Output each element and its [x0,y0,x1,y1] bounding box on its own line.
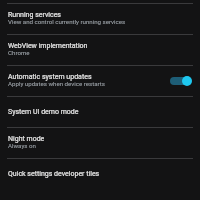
staticText: Apply updates when device restarts [8,80,105,87]
button[interactable]: Running services [0,4,200,34]
staticText: WebView implementation [8,42,88,50]
button[interactable]: Automatic system updates toggle, on [170,75,192,87]
staticText: System UI demo mode [8,108,79,116]
button[interactable]: Quick settings developer tiles [0,159,200,189]
button[interactable]: Night mode [0,128,200,158]
staticText: Chrome [8,49,30,56]
staticText: Night mode [8,135,45,143]
button[interactable]: WebView implementation [0,35,200,65]
staticText: Running services [8,11,61,19]
button[interactable]: System UI demo mode [0,97,200,127]
staticText: View and control currently running servi… [8,18,126,25]
staticText: Automatic system updates [8,73,92,81]
staticText: Always on [8,142,36,149]
button[interactable]: Automatic system updates [0,66,200,96]
staticText: Quick settings developer tiles [8,170,100,178]
